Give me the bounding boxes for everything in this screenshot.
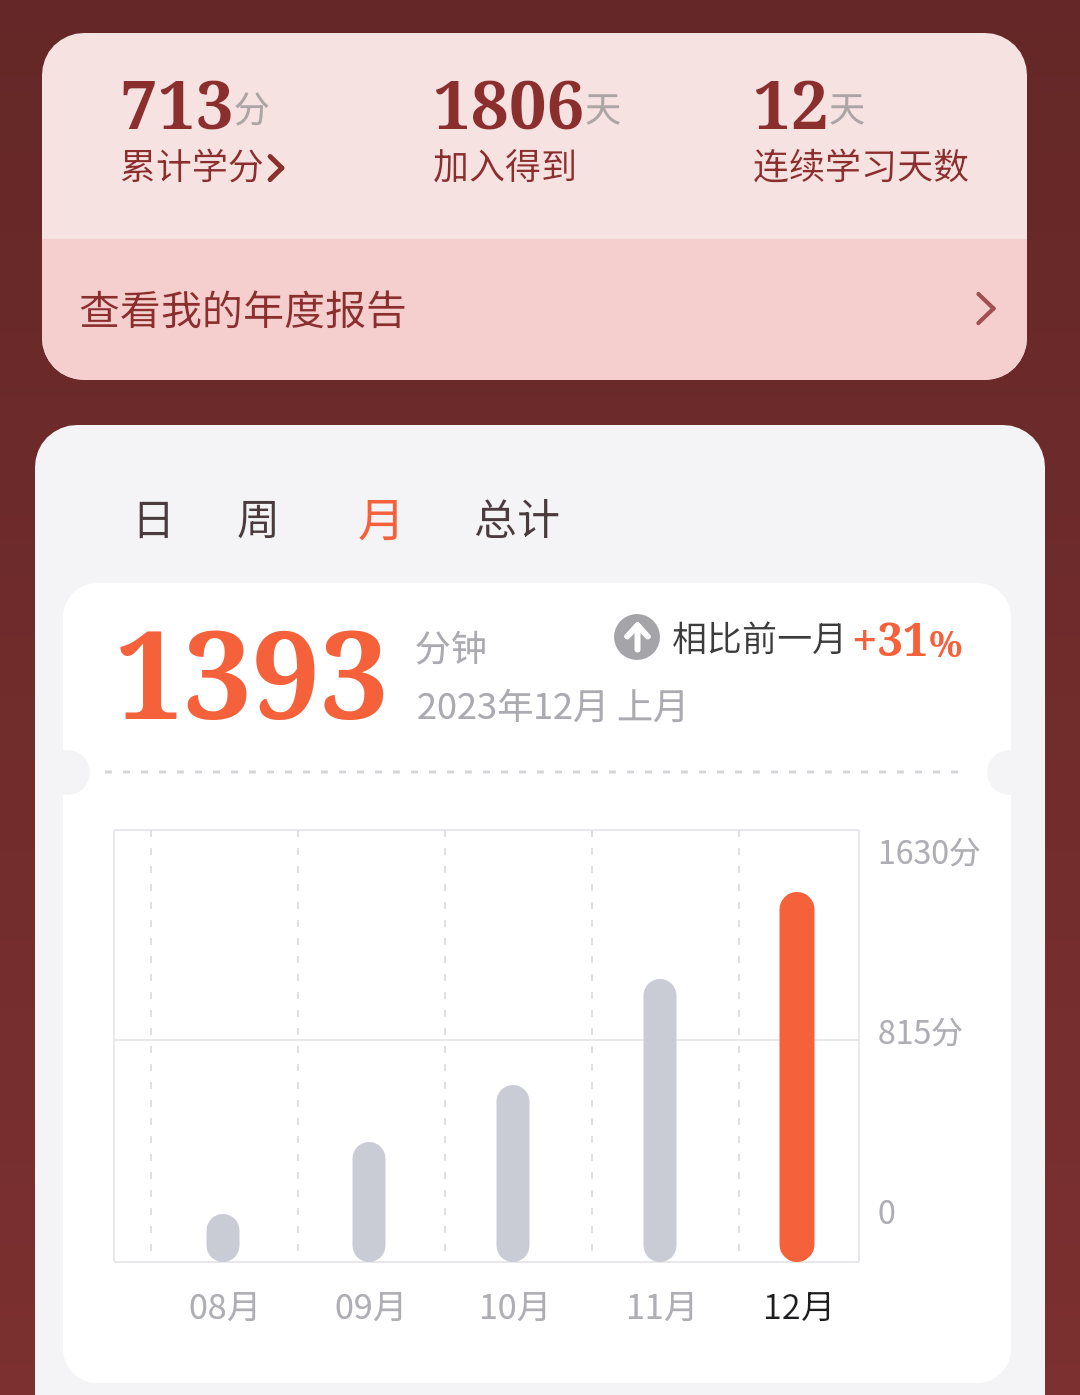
button[interactable]: 周: [235, 485, 282, 547]
staticText: 相比前一月: [672, 610, 848, 661]
staticText: 09月: [335, 1280, 407, 1329]
staticText: 12: [753, 57, 829, 148]
staticText: +31: [852, 608, 929, 669]
staticText: 天: [585, 80, 622, 132]
staticText: 713: [120, 57, 234, 148]
staticText: 0: [878, 1187, 896, 1233]
staticText: 连续学习天数: [753, 137, 970, 189]
staticText: 1630分: [878, 827, 982, 873]
button[interactable]: 月: [356, 482, 407, 550]
staticText: 12月: [763, 1280, 835, 1329]
staticText: 月: [358, 482, 405, 550]
staticText: 815分: [878, 1007, 964, 1053]
staticText: 日: [132, 485, 175, 547]
staticText: 1393: [115, 590, 389, 755]
button[interactable]: 1806: [433, 57, 622, 200]
button[interactable]: 11月: [607, 1280, 717, 1329]
button[interactable]: Trend up: [614, 614, 660, 660]
button[interactable]: 12: [753, 57, 970, 200]
staticText: 分: [234, 80, 271, 132]
staticText: 1806: [433, 57, 585, 148]
button[interactable]: 713: [120, 57, 283, 200]
staticText: 总计: [474, 485, 560, 547]
staticText: 11月: [626, 1280, 698, 1329]
staticText: %: [929, 617, 963, 667]
staticText: 天: [829, 80, 866, 132]
button[interactable]: 查看我的年度报告: [42, 239, 1027, 380]
button[interactable]: 12月: [744, 1280, 854, 1329]
staticText: 08月: [189, 1280, 261, 1329]
button[interactable]: 09月: [316, 1280, 426, 1329]
button[interactable]: 日: [130, 485, 177, 547]
staticText: 10月: [479, 1280, 551, 1329]
button[interactable]: 10月: [460, 1280, 570, 1329]
button[interactable]: 08月: [170, 1280, 280, 1329]
staticText: 查看我的年度报告: [79, 277, 407, 336]
staticText: 加入得到: [433, 137, 578, 189]
button[interactable]: 总计: [472, 485, 562, 547]
staticText: 2023年12月 上月: [417, 677, 689, 729]
staticText: 周: [237, 485, 280, 547]
staticText: 分钟: [415, 619, 488, 671]
staticText: 累计学分: [120, 137, 265, 189]
